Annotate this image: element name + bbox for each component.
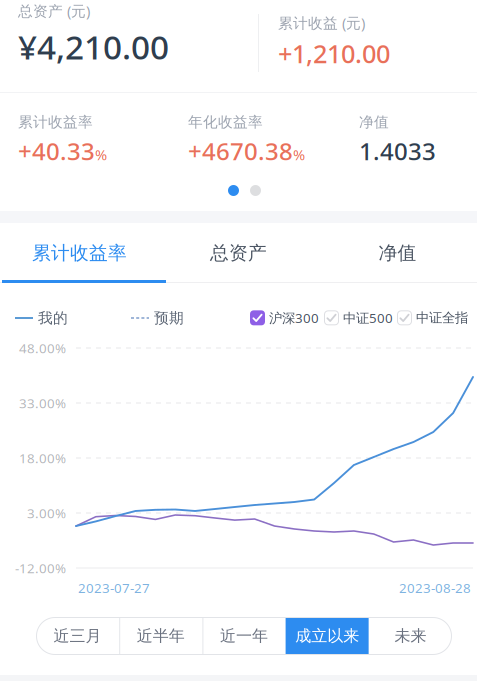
staticText: 累计收益率 <box>18 113 93 131</box>
staticText: 48.00% <box>19 339 66 357</box>
staticText: 净值 <box>378 241 416 264</box>
staticText: +1,210.00 <box>278 36 390 70</box>
staticText: 近三月 <box>54 626 102 646</box>
staticText: 18.00% <box>19 449 66 467</box>
staticText: 累计收益率 <box>32 241 127 264</box>
staticText: -12.00% <box>15 559 66 577</box>
staticText: % <box>293 145 305 164</box>
staticText: 预期 <box>154 309 184 327</box>
staticText: 中证全指 <box>416 310 468 326</box>
staticText: 3.00% <box>27 504 66 522</box>
staticText: 我的 <box>38 309 68 327</box>
button[interactable]: 近一年 <box>202 617 286 655</box>
staticText: 2023-07-27 <box>78 579 150 597</box>
staticText: 未来 <box>394 626 426 646</box>
staticText: 年化收益率 <box>188 113 263 131</box>
button[interactable]: 总资产 <box>159 223 318 283</box>
staticText: +40.33 <box>18 135 95 167</box>
button[interactable]: 未来 <box>369 617 452 655</box>
staticText: 33.00% <box>19 394 66 412</box>
button[interactable]: 近三月 <box>36 617 119 655</box>
staticText: 近半年 <box>137 626 185 646</box>
button[interactable]: 净值 <box>318 223 477 283</box>
staticText: 净值 <box>359 113 389 131</box>
staticText: 总资产 <box>210 241 267 264</box>
staticText: 成立以来 <box>295 626 359 646</box>
staticText: 近一年 <box>220 626 268 646</box>
staticText: 中证500 <box>343 309 393 327</box>
button[interactable]: 累计收益率 <box>0 223 159 283</box>
staticText: 2023-08-28 <box>399 579 471 597</box>
staticText: 1.4033 <box>359 135 436 167</box>
staticText: +4670.38 <box>188 135 293 167</box>
staticText: 总资产 (元) <box>18 1 90 20</box>
staticText: 累计收益 (元) <box>278 13 365 32</box>
button[interactable]: 近半年 <box>119 617 202 655</box>
staticText: 沪深300 <box>269 309 319 327</box>
button[interactable]: 成立以来 <box>286 617 369 655</box>
staticText: ¥4,210.00 <box>18 24 169 69</box>
staticText: % <box>95 145 107 164</box>
